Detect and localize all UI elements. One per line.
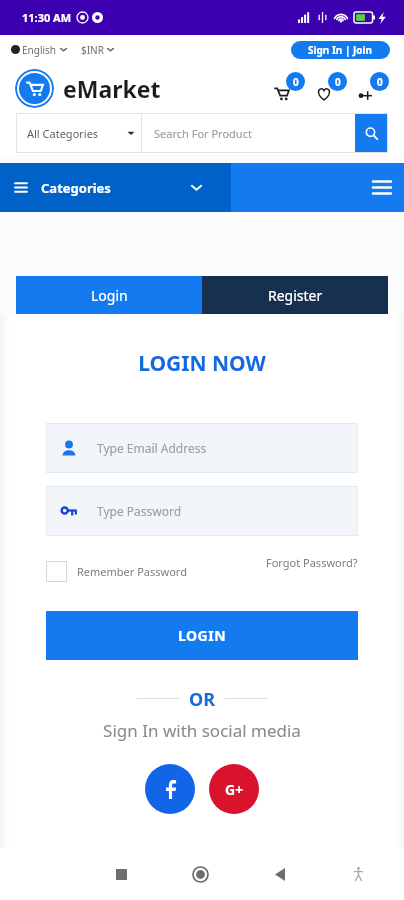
button[interactable]: Search (355, 113, 388, 153)
button[interactable]: Wishlist (317, 74, 347, 104)
button[interactable]: LOGIN (46, 611, 358, 660)
staticText: Register (268, 286, 323, 305)
staticText: Search For Product (154, 126, 252, 141)
button[interactable]: Sign in with Facebook (145, 764, 195, 814)
button[interactable]: Cart (275, 74, 305, 104)
staticText: Remember Password (77, 564, 187, 579)
button[interactable]: Accessibility (319, 848, 398, 900)
staticText: All Categories (27, 126, 99, 141)
button[interactable]: Sign in with Google (209, 764, 259, 814)
staticText: LOGIN NOW (46, 349, 358, 378)
staticText: Type Email Address (97, 440, 207, 456)
staticText: Sign In with social media (46, 719, 358, 742)
staticText: Sign In | Join (308, 43, 373, 57)
button[interactable]: Compare (359, 74, 389, 104)
staticText: 11:30 AM (22, 10, 72, 25)
staticText: $INR (81, 43, 104, 57)
button[interactable]: Type Email Address (46, 423, 358, 473)
staticText: Type Password (97, 503, 182, 519)
staticText: OR (189, 687, 216, 709)
button[interactable]: Search For Product (142, 113, 355, 153)
button[interactable]: Home (161, 848, 240, 900)
button[interactable]: eMarket (15, 64, 161, 113)
button[interactable]: Back (240, 848, 319, 900)
staticText: G+ (225, 780, 244, 799)
button[interactable]: Recents (82, 848, 161, 900)
button[interactable]: Register (202, 276, 388, 314)
button[interactable]: All Categories (16, 113, 141, 153)
button[interactable]: $INR (79, 35, 116, 64)
button[interactable]: Categories (0, 163, 231, 212)
staticText: English (22, 43, 57, 57)
staticText: Login (91, 286, 128, 305)
button[interactable]: Sign In | Join (291, 41, 390, 59)
button[interactable]: Login (16, 276, 202, 314)
staticText: LOGIN (178, 626, 227, 645)
button[interactable]: Type Password (46, 486, 358, 536)
button[interactable]: Menu (231, 163, 404, 212)
staticText: 0 (335, 75, 341, 89)
staticText: 0 (377, 75, 383, 89)
staticText: 0 (293, 75, 299, 89)
staticText: Categories (41, 179, 111, 197)
button[interactable]: Remember Password (46, 560, 187, 582)
staticText: Forgot Password? (266, 555, 358, 570)
button[interactable]: English (9, 35, 69, 64)
button[interactable]: Forgot Password? (266, 560, 358, 582)
staticText: eMarket (63, 73, 161, 104)
